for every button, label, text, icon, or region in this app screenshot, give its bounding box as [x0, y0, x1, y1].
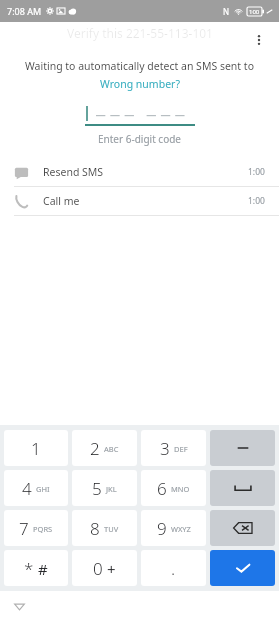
staticText: #: [38, 559, 48, 579]
staticText: GHI: [36, 484, 50, 494]
staticText: +: [107, 559, 116, 579]
button[interactable]: .: [141, 550, 206, 586]
staticText: 5: [92, 477, 102, 500]
staticText: 6: [157, 477, 167, 500]
button[interactable]: Call me: [0, 187, 279, 215]
button[interactable]: 2: [72, 430, 137, 466]
button[interactable]: Dash: [210, 430, 275, 466]
staticText: 7:08 AM: [7, 5, 42, 17]
staticText: Resend SMS: [43, 165, 104, 179]
button[interactable]: 8: [72, 510, 137, 546]
button[interactable]: 3: [141, 430, 206, 466]
staticText: DEF: [174, 444, 188, 454]
staticText: 1:00: [248, 195, 265, 207]
staticText: .: [171, 557, 176, 580]
staticText: 7: [19, 517, 29, 540]
button[interactable]: Hide keyboard: [8, 595, 30, 617]
button[interactable]: 5: [72, 470, 137, 506]
staticText: JKL: [106, 484, 117, 494]
button[interactable]: 1: [4, 430, 68, 466]
staticText: *: [24, 557, 34, 580]
button[interactable]: Backspace: [210, 510, 275, 546]
button[interactable]: 6: [141, 470, 206, 506]
button[interactable]: *: [4, 550, 68, 586]
staticText: WXYZ: [171, 524, 191, 534]
staticText: 9: [157, 517, 167, 540]
staticText: MNO: [171, 484, 190, 494]
staticText: Waiting to automatically detect an SMS s…: [12, 59, 267, 73]
staticText: Verify this 221-55-113-101: [67, 25, 213, 41]
button[interactable]: More options: [243, 24, 275, 56]
staticText: Enter 6-digit code: [0, 132, 279, 146]
button[interactable]: Wrong number?: [94, 76, 186, 92]
button[interactable]: [85, 102, 195, 126]
staticText: 0: [93, 557, 103, 580]
staticText: 1:00: [248, 166, 265, 178]
button[interactable]: 9: [141, 510, 206, 546]
button[interactable]: Space: [210, 470, 275, 506]
staticText: 3: [160, 437, 170, 460]
staticText: 2: [90, 437, 100, 460]
button[interactable]: 4: [4, 470, 68, 506]
staticText: 4: [22, 477, 32, 500]
staticText: Call me: [43, 194, 80, 208]
button[interactable]: 7: [4, 510, 68, 546]
staticText: 1: [31, 437, 41, 460]
staticText: ABC: [104, 444, 119, 454]
staticText: 100: [249, 8, 260, 16]
staticText: PQRS: [33, 524, 53, 534]
button[interactable]: Resend SMS: [0, 158, 279, 186]
button[interactable]: 0: [72, 550, 137, 586]
button[interactable]: Done: [210, 550, 275, 586]
staticText: 8: [90, 517, 100, 540]
staticText: TUV: [104, 524, 119, 534]
staticText: N: [223, 6, 230, 17]
